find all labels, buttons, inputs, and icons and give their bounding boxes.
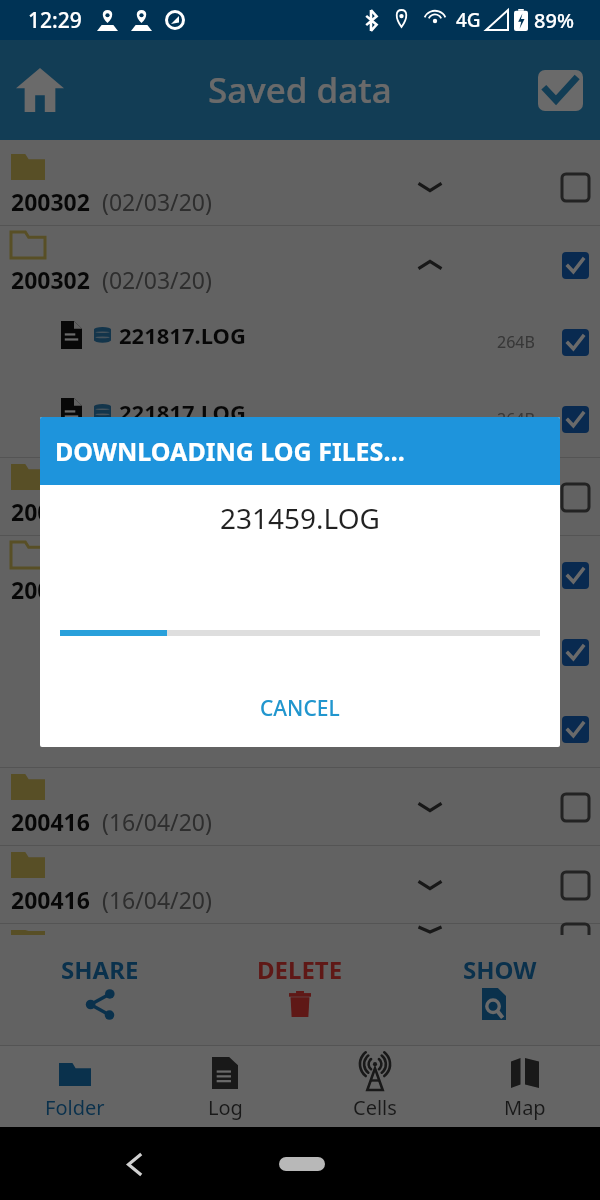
- button[interactable]: 221817.LOG: [0, 613, 600, 690]
- staticText: (16/04/20): [102, 806, 212, 837]
- staticText: 221817.LOG: [119, 630, 246, 660]
- staticText: Cells: [353, 1094, 397, 1121]
- staticText: 264B: [497, 331, 535, 353]
- button[interactable]: CANCEL: [236, 682, 364, 735]
- staticText: (02/03/20): [102, 264, 212, 295]
- button[interactable]: Log: [150, 1046, 300, 1127]
- button[interactable]: Select: [553, 785, 597, 829]
- button[interactable]: 200302: [0, 458, 600, 535]
- button[interactable]: Select: [553, 397, 597, 441]
- staticText: (02/03/20): [102, 186, 212, 217]
- button[interactable]: Select: [553, 707, 597, 751]
- button[interactable]: DELETE: [200, 935, 400, 1045]
- button[interactable]: Select: [553, 165, 597, 209]
- staticText: Saved data: [208, 66, 392, 114]
- button[interactable]: Select all: [529, 59, 591, 121]
- staticText: 200302: [11, 264, 90, 295]
- button[interactable]: 221817.LOG: [0, 380, 600, 457]
- button[interactable]: Select: [553, 320, 597, 364]
- button[interactable]: Home: [9, 59, 71, 121]
- button[interactable]: Select: [553, 553, 597, 597]
- staticText: SHARE: [61, 953, 139, 986]
- button[interactable]: Select: [553, 243, 597, 287]
- button[interactable]: 200302: [0, 536, 600, 613]
- button[interactable]: Select: [553, 924, 597, 935]
- button[interactable]: Home: [279, 1157, 325, 1171]
- staticText: 264B: [497, 408, 535, 430]
- staticText: 200416: [11, 806, 90, 837]
- button[interactable]: Select: [553, 475, 597, 519]
- button[interactable]: 200302: [0, 148, 600, 225]
- button[interactable]: 200416: [0, 846, 600, 923]
- staticText: 200416: [11, 884, 90, 915]
- staticText: Folder: [45, 1094, 105, 1121]
- staticText: Log: [208, 1094, 243, 1121]
- button[interactable]: 200416: [0, 768, 600, 845]
- button[interactable]: Select: [553, 863, 597, 907]
- button[interactable]: Select: [553, 630, 597, 674]
- staticText: 200302: [11, 496, 90, 527]
- staticText: SHOW: [463, 953, 537, 986]
- button[interactable]: Cells: [300, 1046, 450, 1127]
- staticText: Map: [504, 1094, 546, 1121]
- staticText: 221817.LOG: [119, 320, 246, 350]
- staticText: DOWNLOADING LOG FILES…: [55, 434, 405, 468]
- staticText: (16/04/20): [102, 884, 212, 915]
- staticText: 12:29: [28, 6, 82, 35]
- button[interactable]: 221817.LOG: [0, 303, 600, 380]
- button[interactable]: Map: [450, 1046, 600, 1127]
- button[interactable]: 200416: [0, 924, 600, 935]
- staticText: 89%: [534, 7, 574, 34]
- button[interactable]: SHOW: [400, 935, 600, 1045]
- staticText: 200302: [11, 574, 90, 605]
- button[interactable]: 221817.LOG: [0, 690, 600, 767]
- button[interactable]: 200302: [0, 226, 600, 303]
- staticText: 231459.LOG: [220, 499, 380, 537]
- button[interactable]: Folder: [0, 1046, 150, 1127]
- staticText: 221817.LOG: [119, 397, 246, 427]
- staticText: 200302: [11, 186, 90, 217]
- staticText: DELETE: [257, 953, 343, 986]
- staticText: 4G: [456, 7, 481, 33]
- button[interactable]: SHARE: [0, 935, 200, 1045]
- staticText: CANCEL: [260, 694, 340, 723]
- button[interactable]: Back: [116, 1146, 152, 1182]
